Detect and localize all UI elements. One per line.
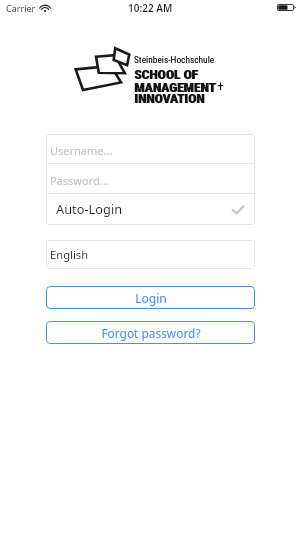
button[interactable]: Auto-Login bbox=[46, 194, 255, 225]
staticText: INNOVATION bbox=[134, 90, 205, 106]
staticText: Password... bbox=[50, 173, 109, 188]
button[interactable]: Username... bbox=[46, 134, 255, 163]
staticText: 10:22 AM bbox=[128, 1, 173, 15]
staticText: English bbox=[50, 247, 89, 262]
staticText: Steinbeis-Hochschule bbox=[134, 54, 215, 65]
staticText: + bbox=[217, 78, 225, 95]
staticText: Username... bbox=[50, 143, 113, 158]
button[interactable]: English bbox=[46, 240, 255, 269]
staticText: SCHOOL OF bbox=[135, 66, 199, 82]
staticText: INNOVATION bbox=[135, 90, 206, 106]
button[interactable]: Login bbox=[46, 286, 255, 309]
staticText: Steinbeis-Hochschule bbox=[134, 54, 215, 65]
staticText: SCHOOL OF bbox=[134, 66, 198, 82]
staticText: Carrier bbox=[6, 2, 36, 14]
staticText: Login bbox=[135, 290, 167, 306]
staticText: MANAGEMENT bbox=[134, 79, 216, 95]
staticText: MANAGEMENT bbox=[135, 79, 217, 95]
staticText: Forgot password? bbox=[101, 325, 201, 341]
button[interactable]: Forgot password? bbox=[46, 321, 255, 344]
staticText: Auto-Login bbox=[56, 200, 123, 217]
button[interactable]: Password... bbox=[46, 164, 255, 193]
